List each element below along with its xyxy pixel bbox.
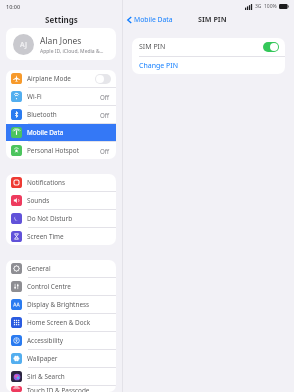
button[interactable]: Control Centre — [6, 278, 116, 295]
staticText: SIM PIN — [198, 14, 227, 24]
staticText: Sounds — [27, 196, 111, 205]
staticText: SIM PIN — [139, 42, 263, 52]
staticText: Off — [100, 147, 110, 155]
staticText: Bluetooth — [27, 110, 100, 119]
staticText: Siri & Search — [27, 372, 111, 381]
staticText: 3G — [255, 3, 262, 10]
staticText: Display & Brightness — [27, 300, 111, 309]
staticText: Airplane Mode — [27, 74, 95, 83]
staticText: Mobile Data — [134, 15, 173, 24]
staticText: Control Centre — [27, 282, 111, 291]
staticText: Wi-Fi — [27, 92, 100, 101]
button[interactable]: Mobile Data — [6, 124, 116, 141]
button[interactable]: Notifications — [6, 174, 116, 191]
button[interactable]: Airplane Mode — [6, 70, 116, 87]
staticText: Settings — [45, 14, 78, 25]
button[interactable]: Wi-Fi — [6, 88, 116, 105]
button[interactable]: Bluetooth — [6, 106, 116, 123]
staticText: 10:00 — [6, 3, 21, 10]
button[interactable]: Sounds — [6, 192, 116, 209]
staticText: Home Screen & Dock — [27, 318, 111, 327]
staticText: Do Not Disturb — [27, 214, 111, 223]
staticText: Accessibility — [27, 336, 111, 345]
staticText: Change PIN — [139, 61, 179, 71]
button[interactable]: Do Not Disturb — [6, 210, 116, 227]
button[interactable]: AJ — [6, 28, 116, 60]
staticText: General — [27, 264, 111, 273]
staticText: Touch ID & Passcode — [27, 386, 111, 392]
button[interactable]: SIM PIN — [132, 38, 285, 56]
button[interactable]: Wallpaper — [6, 350, 116, 367]
button[interactable]: Change PIN — [132, 57, 285, 74]
other: Back — [127, 16, 132, 24]
button[interactable]: Home Screen & Dock — [6, 314, 116, 331]
staticText: Off — [100, 93, 110, 101]
staticText: 100% — [264, 3, 277, 10]
button[interactable]: Accessibility — [6, 332, 116, 349]
staticText: Notifications — [27, 178, 111, 187]
staticText: Off — [100, 111, 110, 119]
button[interactable]: Touch ID & Passcode — [6, 386, 116, 392]
button[interactable]: Screen Time — [6, 228, 116, 245]
staticText: AJ — [20, 40, 27, 50]
staticText: Wallpaper — [27, 354, 111, 363]
staticText: Personal Hotspot — [27, 146, 100, 155]
button[interactable]: General — [6, 260, 116, 277]
staticText: Apple ID, iCloud, Media &… — [40, 48, 104, 55]
button[interactable]: Back — [127, 15, 173, 24]
staticText: Mobile Data — [27, 128, 111, 137]
button[interactable]: Siri & Search — [6, 368, 116, 385]
button[interactable]: Display & Brightness — [6, 296, 116, 313]
button[interactable]: Personal Hotspot — [6, 142, 116, 159]
staticText: Alan Jones — [40, 35, 82, 47]
staticText: Screen Time — [27, 232, 111, 241]
